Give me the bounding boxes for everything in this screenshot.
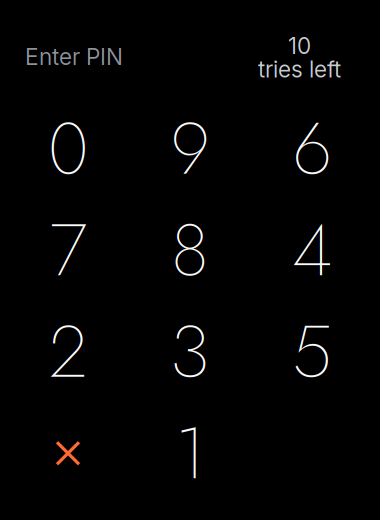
staticText: 9 xyxy=(170,97,209,201)
button[interactable]: 1 xyxy=(129,402,251,504)
button[interactable]: 8 xyxy=(129,199,251,301)
button[interactable]: 4 xyxy=(251,199,373,301)
staticText: 3 xyxy=(170,300,210,404)
button[interactable]: 7 xyxy=(7,199,129,301)
staticText: 6 xyxy=(292,97,331,201)
staticText: 5 xyxy=(292,300,332,404)
button[interactable]: Delete xyxy=(7,402,129,504)
staticText: 0 xyxy=(48,97,88,201)
staticText: 2 xyxy=(49,300,87,404)
button[interactable]: 5 xyxy=(251,301,373,402)
staticText: 4 xyxy=(292,198,332,302)
button[interactable]: 6 xyxy=(251,98,373,199)
staticText: 8 xyxy=(171,198,209,302)
button[interactable]: 0 xyxy=(7,98,129,199)
staticText: Enter PIN xyxy=(25,43,123,70)
button[interactable]: 3 xyxy=(129,301,251,402)
staticText: 7 xyxy=(49,198,86,302)
staticText: 10 xyxy=(288,32,311,59)
button[interactable]: 2 xyxy=(7,301,129,402)
staticText: tries left xyxy=(258,55,341,83)
button[interactable]: 9 xyxy=(129,98,251,199)
staticText: 1 xyxy=(175,401,205,505)
